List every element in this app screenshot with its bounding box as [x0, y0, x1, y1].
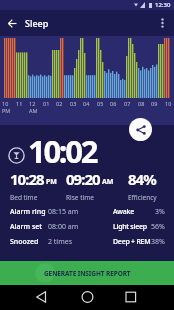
button[interactable]: [129, 118, 152, 141]
staticText: Sleep: [25, 17, 49, 29]
staticText: 11: [16, 100, 23, 107]
staticText: Deep + REM: [113, 237, 151, 247]
staticText: Alarm ring: [10, 207, 46, 217]
staticText: 10: [2, 100, 9, 107]
staticText: 38%: [151, 237, 165, 247]
button[interactable]: [8, 19, 17, 28]
staticText: 04: [83, 100, 90, 107]
staticText: Bed time: [10, 193, 38, 202]
staticText: 08:15 am: [48, 207, 79, 217]
staticText: Alarm set: [10, 222, 42, 232]
staticText: 08: [138, 100, 145, 107]
staticText: PM: [2, 107, 11, 114]
button[interactable]: [0, 285, 58, 310]
button[interactable]: [161, 18, 164, 28]
staticText: PM: [46, 177, 57, 187]
staticText: 01: [43, 100, 50, 107]
staticText: 3%: [155, 207, 165, 217]
staticText: 09: [151, 100, 158, 107]
button[interactable]: GENERATE INSIGHT REPORT: [0, 261, 174, 285]
staticText: 56%: [151, 222, 165, 232]
staticText: Rise time: [66, 193, 94, 202]
button[interactable]: [116, 285, 174, 310]
staticText: AM: [29, 107, 38, 114]
staticText: 09:20: [66, 169, 100, 189]
staticText: 05: [97, 100, 104, 107]
staticText: Snoozed: [10, 237, 39, 247]
staticText: 08:00 am: [48, 222, 79, 232]
button[interactable]: [58, 285, 116, 310]
staticText: AM: [102, 177, 114, 187]
staticText: Awake: [113, 207, 134, 217]
staticText: 10:28: [10, 169, 44, 189]
staticText: Light sleep: [113, 222, 147, 232]
staticText: 12: [29, 100, 36, 107]
staticText: 2 times: [48, 237, 73, 247]
staticText: 10:02: [28, 130, 97, 172]
staticText: Efficiency: [128, 193, 157, 202]
staticText: 03: [70, 100, 77, 107]
staticText: 07: [124, 100, 131, 107]
staticText: 12:30: [155, 1, 171, 9]
staticText: 02: [56, 100, 63, 107]
staticText: GENERATE INSIGHT REPORT: [44, 269, 131, 278]
staticText: 84%: [128, 169, 156, 189]
staticText: 10: [165, 100, 172, 107]
staticText: 06: [110, 100, 117, 107]
